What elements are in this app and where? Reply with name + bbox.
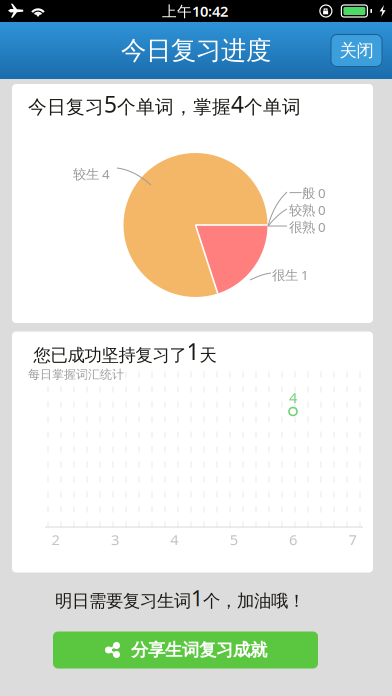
staticText: 明日需要复习生词1个，加油哦！ (55, 584, 305, 612)
staticText: 很熟 0 (289, 218, 326, 236)
staticText: 4 (289, 388, 297, 407)
staticText: 关闭 (339, 40, 373, 61)
staticText: 一般 0 (289, 184, 326, 202)
staticText: 上午10:42 (162, 1, 228, 21)
staticText: 2 (51, 530, 59, 549)
button[interactable]: 关闭 (331, 34, 382, 66)
staticText: 很生 1 (272, 266, 309, 284)
button[interactable]: 分享生词复习成就 (53, 631, 318, 668)
staticText: 较生 4 (73, 165, 110, 183)
staticText: 5 (230, 530, 238, 549)
staticText: 今日复习进度 (121, 35, 271, 66)
staticText: 4 (170, 530, 178, 549)
staticText: 您已成功坚持复习了1天 (33, 336, 216, 366)
staticText: 每日掌握词汇统计 (28, 367, 124, 382)
staticText: 较熟 0 (289, 201, 326, 219)
staticText: 分享生词复习成就 (131, 639, 267, 661)
staticText: 3 (111, 530, 119, 549)
staticText: 7 (348, 530, 356, 549)
staticText: 今日复习5个单词，掌握4个单词 (28, 89, 301, 119)
staticText: 6 (289, 530, 297, 549)
